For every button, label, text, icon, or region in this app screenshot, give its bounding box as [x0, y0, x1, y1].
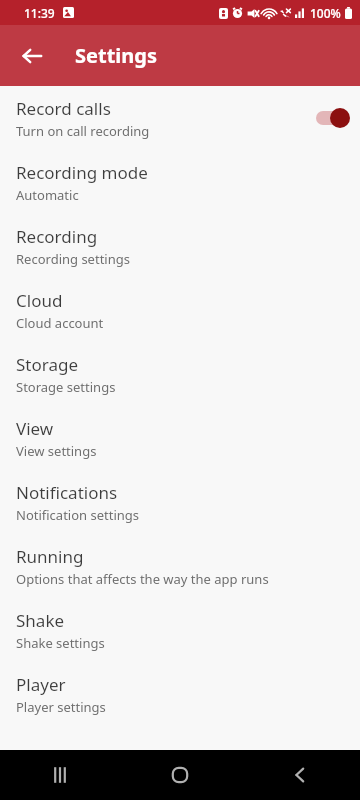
button[interactable]: Recording	[0, 214, 360, 278]
staticText: View	[16, 417, 54, 440]
staticText: Player	[16, 673, 66, 696]
staticText: Notification settings	[16, 506, 140, 524]
staticText: 11:39	[24, 5, 55, 21]
button[interactable]: Player	[0, 662, 360, 726]
button[interactable]: Storage	[0, 342, 360, 406]
staticText: Notifications	[16, 481, 118, 504]
staticText: Shake settings	[16, 634, 105, 652]
button[interactable]: Back	[240, 750, 360, 800]
button[interactable]: Notifications	[0, 470, 360, 534]
button[interactable]: Shake	[0, 598, 360, 662]
staticText: View settings	[16, 442, 97, 460]
staticText: Shake	[16, 609, 65, 632]
staticText: Cloud	[16, 289, 63, 312]
button[interactable]: Recent apps	[0, 750, 120, 800]
button[interactable]: Running	[0, 534, 360, 598]
staticText: Turn on call recording	[16, 122, 150, 140]
staticText: Storage settings	[16, 378, 116, 396]
staticText: Record calls	[16, 97, 111, 120]
button[interactable]: Cloud	[0, 278, 360, 342]
staticText: Storage	[16, 353, 79, 376]
staticText: Recording	[16, 225, 98, 248]
staticText: 100%	[310, 5, 341, 21]
staticText: Recording settings	[16, 250, 130, 268]
staticText: Options that affects the way the app run…	[16, 570, 269, 588]
button[interactable]: Home	[120, 750, 240, 800]
staticText: Automatic	[16, 186, 79, 204]
button[interactable]: Recording mode	[0, 150, 360, 214]
button[interactable]: Record calls	[0, 86, 360, 150]
staticText: Recording mode	[16, 161, 148, 184]
button[interactable]: Record calls toggle	[296, 100, 348, 136]
staticText: Running	[16, 545, 84, 568]
staticText: Player settings	[16, 698, 106, 716]
button[interactable]: View	[0, 406, 360, 470]
button[interactable]: Back	[10, 34, 54, 78]
staticText: Cloud account	[16, 314, 104, 332]
staticText: Settings	[75, 42, 157, 69]
